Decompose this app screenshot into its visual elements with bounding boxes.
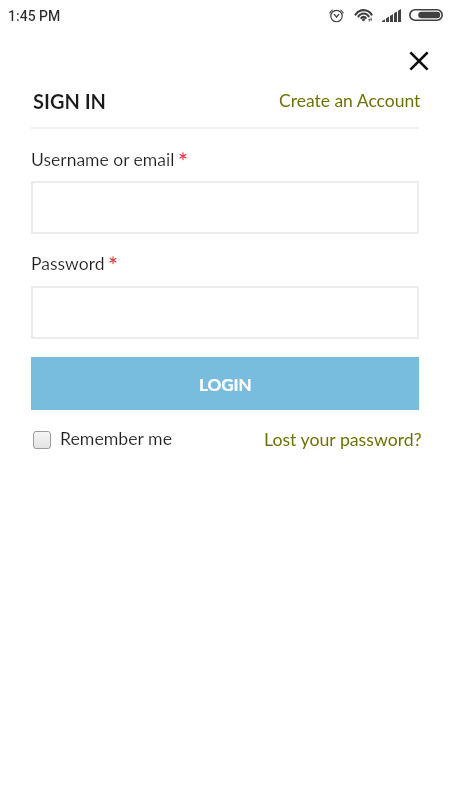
button[interactable]: Lost your password? [258,423,428,456]
staticText: Create an Account [279,90,421,111]
button[interactable]: Create an Account [273,84,427,117]
staticText: 1:45 PM [8,8,61,24]
staticText: Username or email [31,149,175,170]
button[interactable]: SIGN IN [27,83,113,119]
staticText: SIGN IN [33,89,107,113]
button[interactable]: LOGIN [31,357,419,410]
button[interactable]: Remember me [27,422,179,455]
staticText: LOGIN [199,374,252,394]
staticText: Password [31,253,105,274]
button[interactable]: Close [401,43,437,79]
staticText: Lost your password? [264,429,422,450]
button[interactable] [31,286,419,339]
staticText: Remember me [60,428,173,449]
button[interactable] [31,181,419,234]
